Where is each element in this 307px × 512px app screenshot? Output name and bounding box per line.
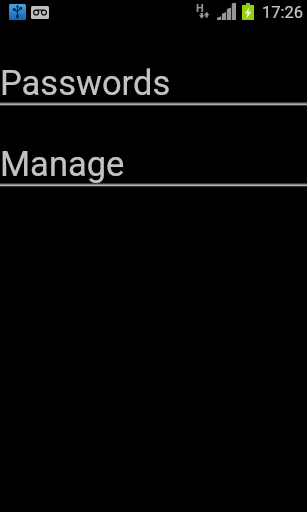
other: Signal strength [217,3,236,20]
other: Voicemail [31,6,49,19]
button[interactable]: Manage [0,105,307,186]
other: USB connected [9,4,26,20]
other: Battery charging [242,3,254,20]
staticText: H [196,2,204,15]
staticText: Manage [0,144,125,184]
staticText: 17:26 [262,3,304,22]
staticText: Passwords [0,63,171,103]
button[interactable]: Passwords [0,24,307,105]
